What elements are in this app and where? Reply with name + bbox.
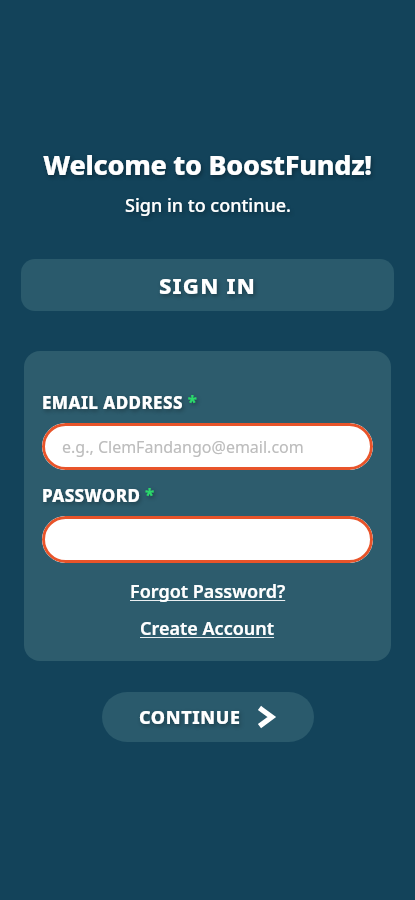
staticText: CONTINUE: [139, 705, 241, 730]
staticText: PASSWORD *: [42, 484, 155, 507]
staticText: EMAIL ADDRESS *: [42, 391, 198, 414]
button[interactable]: CONTINUE: [102, 692, 314, 742]
staticText: Welcome to BoostFundz!: [43, 146, 372, 183]
staticText: e.g., ClemFandango@email.com: [62, 436, 304, 458]
button[interactable]: SIGN IN: [21, 259, 394, 311]
button[interactable]: Forgot Password?: [130, 579, 286, 604]
staticText: Forgot Password?: [130, 579, 286, 604]
staticText: SIGN IN: [159, 270, 256, 300]
staticText: Create Account: [140, 616, 275, 641]
staticText: Sign in to continue.: [125, 193, 291, 218]
button[interactable]: Create Account: [140, 616, 275, 641]
button[interactable]: [42, 516, 373, 563]
button[interactable]: e.g., ClemFandango@email.com: [42, 423, 373, 470]
